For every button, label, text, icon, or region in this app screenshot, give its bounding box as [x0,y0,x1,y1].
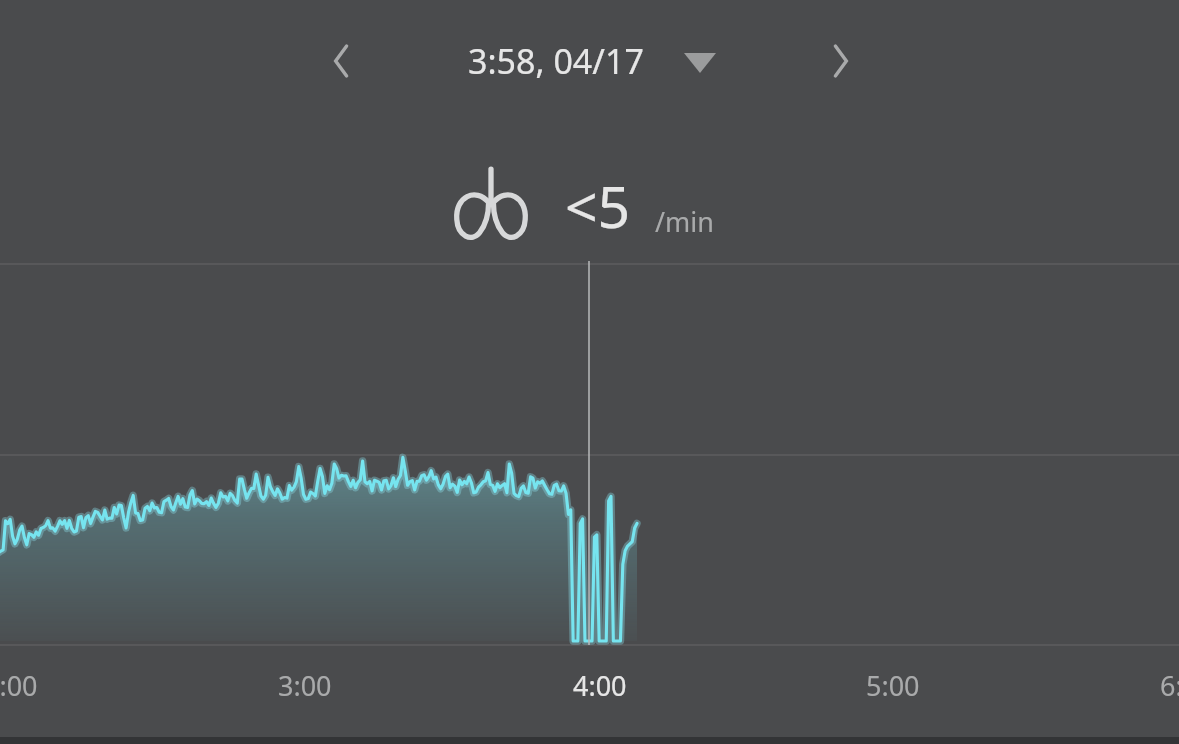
button[interactable] [455,34,727,88]
button[interactable]: Previous [312,34,364,88]
button[interactable]: Next [818,34,870,88]
